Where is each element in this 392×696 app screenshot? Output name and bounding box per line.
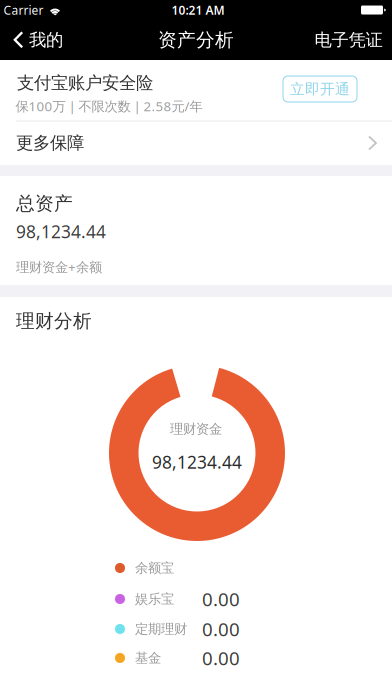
- staticText: 余额宝: [135, 560, 174, 576]
- button[interactable]: 更多保障: [0, 121, 392, 165]
- staticText: 我的: [29, 29, 63, 51]
- button[interactable]: 立即开通: [283, 76, 357, 102]
- staticText: 立即开通: [290, 80, 350, 98]
- staticText: 保100万 | 不限次数 | 2.58元/年: [15, 97, 202, 115]
- button[interactable]: 电子凭证: [302, 20, 392, 60]
- button[interactable]: 我的: [0, 20, 75, 60]
- staticText: 更多保障: [16, 132, 84, 154]
- staticText: 理财资金+余额: [16, 258, 102, 276]
- staticText: 10:21 AM: [171, 2, 224, 18]
- staticText: 资产分析: [158, 28, 234, 51]
- staticText: 娱乐宝: [135, 591, 174, 607]
- staticText: 支付宝账户安全险: [17, 72, 153, 94]
- staticText: 基金: [135, 650, 161, 666]
- staticText: 0.00: [202, 646, 240, 670]
- staticText: 98,1234.44: [16, 220, 106, 243]
- staticText: 98,1234.44: [152, 450, 242, 473]
- staticText: Carrier: [3, 2, 43, 18]
- staticText: 理财分析: [16, 309, 92, 332]
- staticText: 0.00: [202, 587, 240, 611]
- staticText: 电子凭证: [314, 29, 382, 51]
- staticText: 0.00: [202, 617, 240, 641]
- staticText: 总资产: [16, 192, 73, 215]
- staticText: 理财资金: [170, 421, 222, 437]
- staticText: 定期理财: [135, 621, 187, 637]
